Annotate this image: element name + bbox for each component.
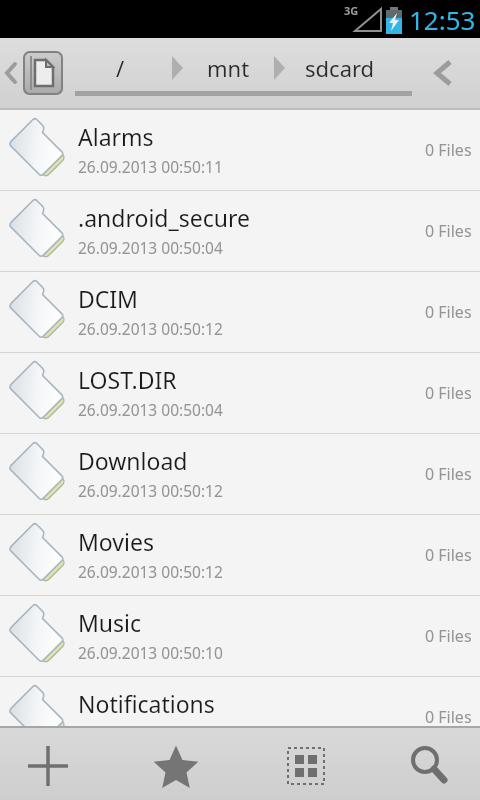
staticText: 26.09.2013 00:50:10 [78, 642, 223, 663]
button[interactable]: DCIM [0, 272, 480, 353]
staticText: 26.09.2013 00:50:12 [78, 318, 223, 339]
staticText: 26.09.2013 00:50:04 [78, 237, 223, 258]
staticText: 26.09.2013 00:50:12 [78, 723, 223, 744]
staticText: 3G [344, 3, 359, 18]
button[interactable]: LOST.DIR [0, 353, 480, 434]
button[interactable]: / [77, 38, 163, 98]
staticText: 26.09.2013 00:50:04 [78, 399, 223, 420]
button[interactable]: Movies [0, 515, 480, 596]
staticText: .android_secure [78, 202, 250, 233]
button[interactable]: .android_secure [0, 191, 480, 272]
staticText: 0 Files [425, 139, 472, 161]
staticText: LOST.DIR [78, 364, 177, 395]
button[interactable] [367, 728, 480, 800]
staticText: Alarms [78, 121, 154, 152]
button[interactable] [240, 728, 367, 800]
button[interactable] [432, 59, 456, 89]
staticText: 26.09.2013 00:50:12 [78, 561, 223, 582]
staticText: 26.09.2013 00:50:11 [78, 156, 223, 177]
staticText: 12:53 [409, 2, 476, 37]
staticText: 0 Files [425, 544, 472, 566]
staticText: 0 Files [425, 220, 472, 242]
staticText: 0 Files [425, 625, 472, 647]
staticText: DCIM [78, 283, 138, 314]
button[interactable]: Notifications [0, 677, 480, 758]
staticText: Music [78, 607, 142, 638]
button[interactable]: Music [0, 596, 480, 677]
staticText: 26.09.2013 00:50:12 [78, 480, 223, 501]
staticText: Notifications [78, 688, 215, 719]
button[interactable]: Alarms [0, 110, 480, 191]
staticText: Movies [78, 526, 154, 557]
button[interactable] [112, 728, 240, 800]
button[interactable]: sdcard [293, 38, 387, 98]
staticText: sdcard [305, 53, 375, 83]
staticText: mnt [207, 53, 250, 83]
button[interactable]: Download [0, 434, 480, 515]
staticText: 0 Files [425, 463, 472, 485]
staticText: Download [78, 445, 188, 476]
staticText: 0 Files [425, 706, 472, 728]
button[interactable] [23, 51, 63, 95]
staticText: / [116, 53, 125, 83]
button[interactable]: mnt [191, 38, 265, 98]
button[interactable] [0, 728, 112, 800]
staticText: 0 Files [425, 301, 472, 323]
staticText: 0 Files [425, 382, 472, 404]
